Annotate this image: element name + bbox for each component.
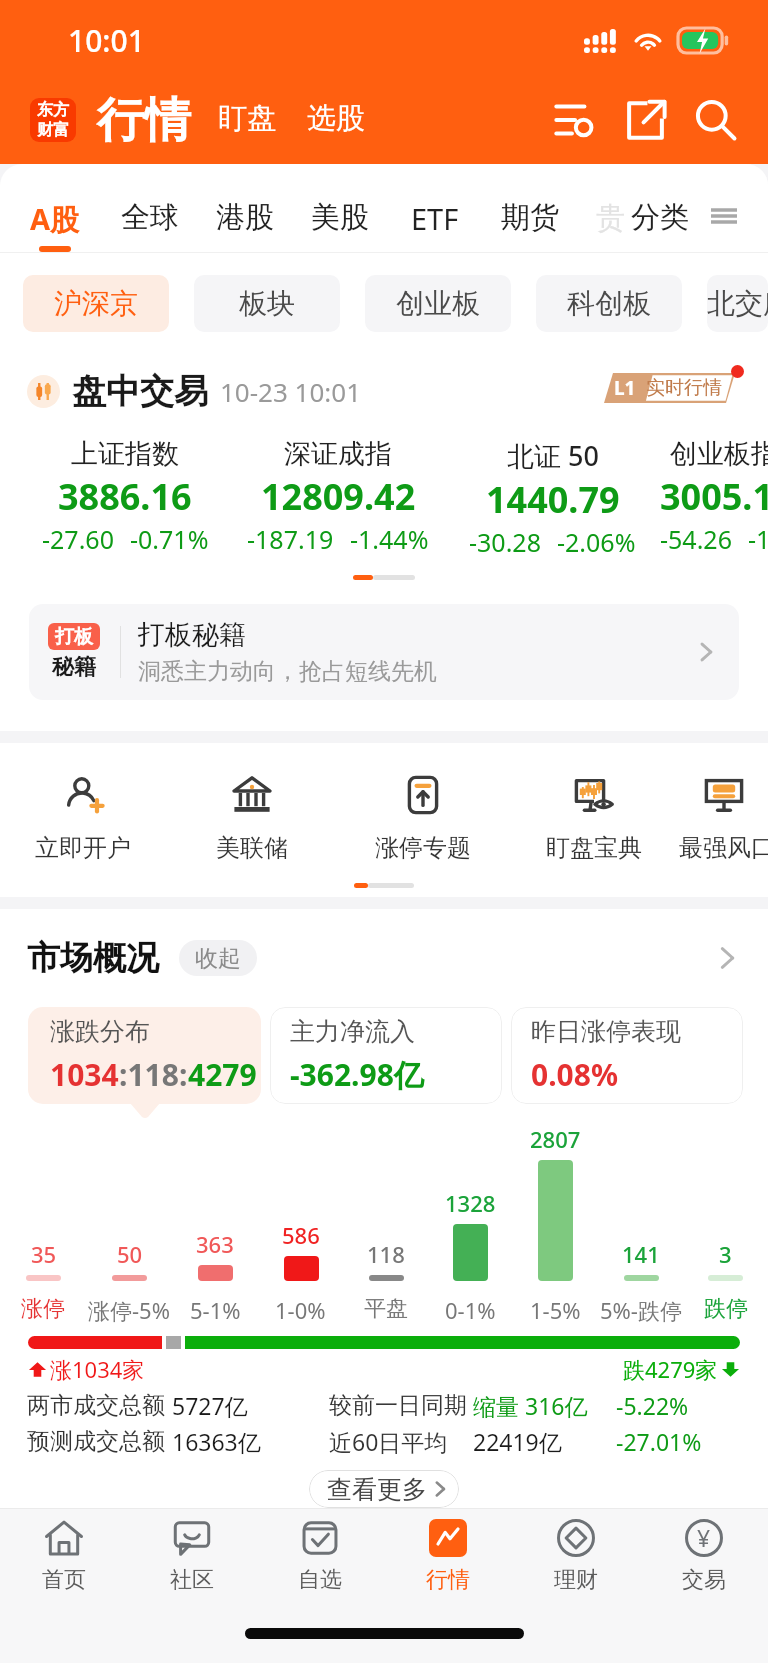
staticText: -1.77%: [748, 522, 768, 556]
staticText: -2.06%: [557, 525, 636, 559]
staticText: 期货: [501, 199, 559, 236]
button[interactable]: L1: [604, 373, 735, 403]
button[interactable]: ETF: [387, 164, 482, 253]
staticText: 分类: [631, 199, 689, 236]
button[interactable]: 上证指数: [19, 437, 231, 556]
button[interactable]: More: [712, 943, 742, 973]
staticText: 363: [196, 1229, 234, 1259]
staticText: 行情: [97, 91, 191, 150]
button[interactable]: 科创板: [536, 275, 682, 332]
button[interactable]: 美联储: [166, 775, 338, 863]
staticText: -187.19: [247, 522, 334, 556]
staticText: 0.08%: [531, 1054, 618, 1095]
button[interactable]: 查看更多: [309, 1470, 459, 1508]
button[interactable]: 盯盘宝典: [508, 775, 679, 863]
button[interactable]: 涨停专题: [338, 775, 508, 863]
button[interactable]: 选股: [307, 100, 365, 140]
button[interactable]: 昨日涨停表现: [511, 1007, 743, 1104]
button[interactable]: A股: [7, 164, 102, 253]
staticText: 跌停: [704, 1295, 748, 1323]
button[interactable]: 首页: [0, 1509, 128, 1594]
staticText: 选股: [307, 100, 365, 137]
staticText: 贵: [596, 200, 625, 237]
staticText: -0.71%: [130, 522, 209, 556]
button[interactable]: ¥: [640, 1509, 768, 1594]
staticText: 涨停: [21, 1295, 65, 1323]
staticText: 上证指数: [71, 437, 179, 471]
button[interactable]: 社区: [128, 1509, 256, 1594]
staticText: L1: [614, 375, 636, 401]
button[interactable]: 行情: [384, 1509, 512, 1594]
staticText: 3886.16: [58, 472, 192, 521]
button[interactable]: 打板: [29, 604, 739, 700]
staticText: 平盘: [364, 1295, 408, 1323]
staticText: -54.26: [660, 522, 732, 556]
staticText: -5.22%: [616, 1390, 689, 1421]
staticText: 4279: [188, 1054, 257, 1095]
staticText: :118:: [119, 1054, 188, 1095]
button[interactable]: 沪深京: [23, 275, 169, 332]
button[interactable]: 期货: [482, 164, 577, 253]
staticText: 全球: [121, 199, 179, 236]
button[interactable]: 深证成指: [231, 437, 445, 556]
staticText: 1034: [50, 1054, 119, 1095]
staticText: -27.01%: [616, 1426, 702, 1457]
staticText: 盘中交易: [72, 370, 208, 413]
button[interactable]: 立即开户: [0, 775, 166, 863]
staticText: 昨日涨停表现: [531, 1016, 681, 1047]
staticText: 创业板指: [670, 437, 768, 471]
button[interactable]: 盯盘: [218, 100, 276, 140]
staticText: 118: [367, 1239, 405, 1269]
staticText: 北交所: [707, 286, 768, 321]
staticText: 缩量 316亿: [473, 1390, 588, 1421]
staticText: 实时行情: [646, 376, 722, 400]
button[interactable]: Search: [689, 93, 743, 147]
button[interactable]: 美股: [292, 164, 387, 253]
button[interactable]: Share: [618, 93, 672, 147]
staticText: 预测成交总额: [27, 1427, 165, 1456]
staticText: 涨1034家: [50, 1354, 145, 1384]
button[interactable]: Menu: [711, 203, 737, 229]
staticText: 打板: [55, 625, 93, 649]
staticText: 涨停-5%: [88, 1295, 170, 1325]
staticText: 16363亿: [172, 1426, 261, 1457]
button[interactable]: 创业板: [365, 275, 511, 332]
staticText: 秘籍: [52, 653, 96, 681]
button[interactable]: 板块: [194, 275, 340, 332]
button[interactable]: 涨跌分布: [28, 1007, 261, 1104]
staticText: 查看更多: [327, 1474, 427, 1505]
button[interactable]: 北证 50: [445, 437, 660, 559]
button[interactable]: 全球: [102, 164, 197, 253]
button[interactable]: 主力净流入: [270, 1007, 502, 1104]
button[interactable]: 东方: [30, 98, 76, 142]
staticText: 22419亿: [473, 1426, 562, 1457]
staticText: 财富: [37, 120, 69, 140]
staticText: 美联储: [216, 833, 288, 863]
button[interactable]: 收起: [179, 940, 257, 976]
button[interactable]: 北交所: [707, 275, 768, 332]
staticText: 主力净流入: [290, 1016, 415, 1047]
staticText: 深证成指: [284, 437, 392, 471]
staticText: 行情: [426, 1566, 470, 1594]
staticText: 立即开户: [35, 833, 131, 863]
staticText: 理财: [554, 1566, 598, 1594]
staticText: 5%-跌停: [600, 1295, 682, 1325]
staticText: -1.44%: [350, 522, 429, 556]
button[interactable]: 港股: [197, 164, 292, 253]
button[interactable]: 自选: [256, 1509, 384, 1594]
staticText: 586: [282, 1220, 320, 1250]
button[interactable]: 行情: [97, 91, 191, 150]
staticText: 港股: [216, 199, 274, 236]
button[interactable]: 理财: [512, 1509, 640, 1594]
button[interactable]: 创业板指: [660, 437, 768, 556]
staticText: 盯盘: [218, 100, 276, 137]
staticText: 2807: [530, 1124, 581, 1154]
button[interactable]: 最强风口: [679, 775, 768, 863]
button[interactable]: Filter settings: [546, 93, 600, 147]
staticText: 1-0%: [275, 1295, 326, 1325]
staticText: -27.60: [42, 522, 114, 556]
staticText: 5-1%: [190, 1295, 241, 1325]
staticText: 5727亿: [172, 1390, 248, 1421]
button[interactable]: 分类: [631, 199, 689, 236]
staticText: 自选: [298, 1566, 342, 1594]
